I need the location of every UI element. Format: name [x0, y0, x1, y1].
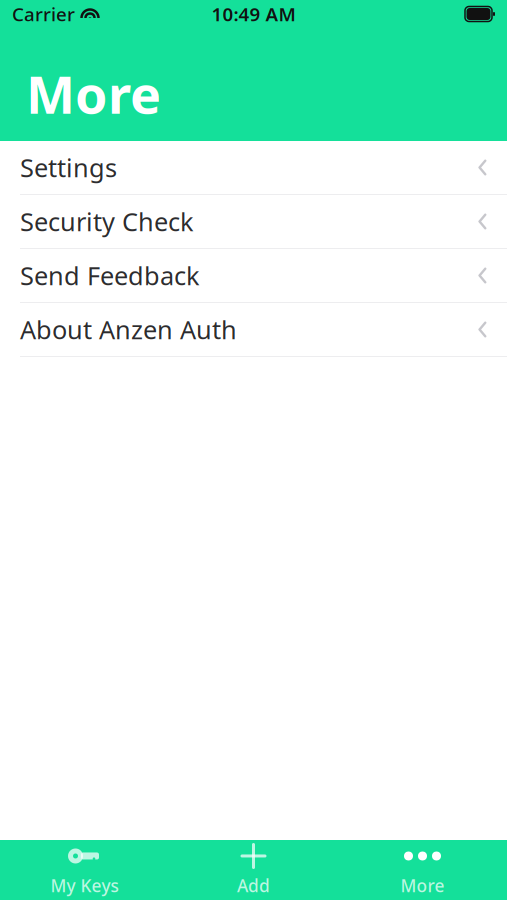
staticText: More — [400, 874, 444, 897]
staticText: About Anzen Auth — [20, 313, 237, 346]
button[interactable]: Settings — [0, 141, 507, 195]
staticText: Send Feedback — [20, 259, 200, 292]
staticText: More — [26, 59, 161, 128]
button[interactable]: Security Check — [0, 195, 507, 249]
staticText: Add — [237, 874, 270, 897]
button[interactable]: My Keys — [0, 840, 169, 900]
button[interactable]: Add — [169, 840, 338, 900]
staticText: Settings — [20, 151, 117, 184]
button[interactable]: Send Feedback — [0, 249, 507, 303]
staticText: My Keys — [50, 874, 118, 897]
staticText: Carrier — [12, 2, 75, 26]
button[interactable]: More — [338, 840, 507, 900]
staticText: 10:49 AM — [211, 2, 295, 26]
button[interactable]: About Anzen Auth — [0, 303, 507, 357]
staticText: Security Check — [20, 205, 194, 238]
